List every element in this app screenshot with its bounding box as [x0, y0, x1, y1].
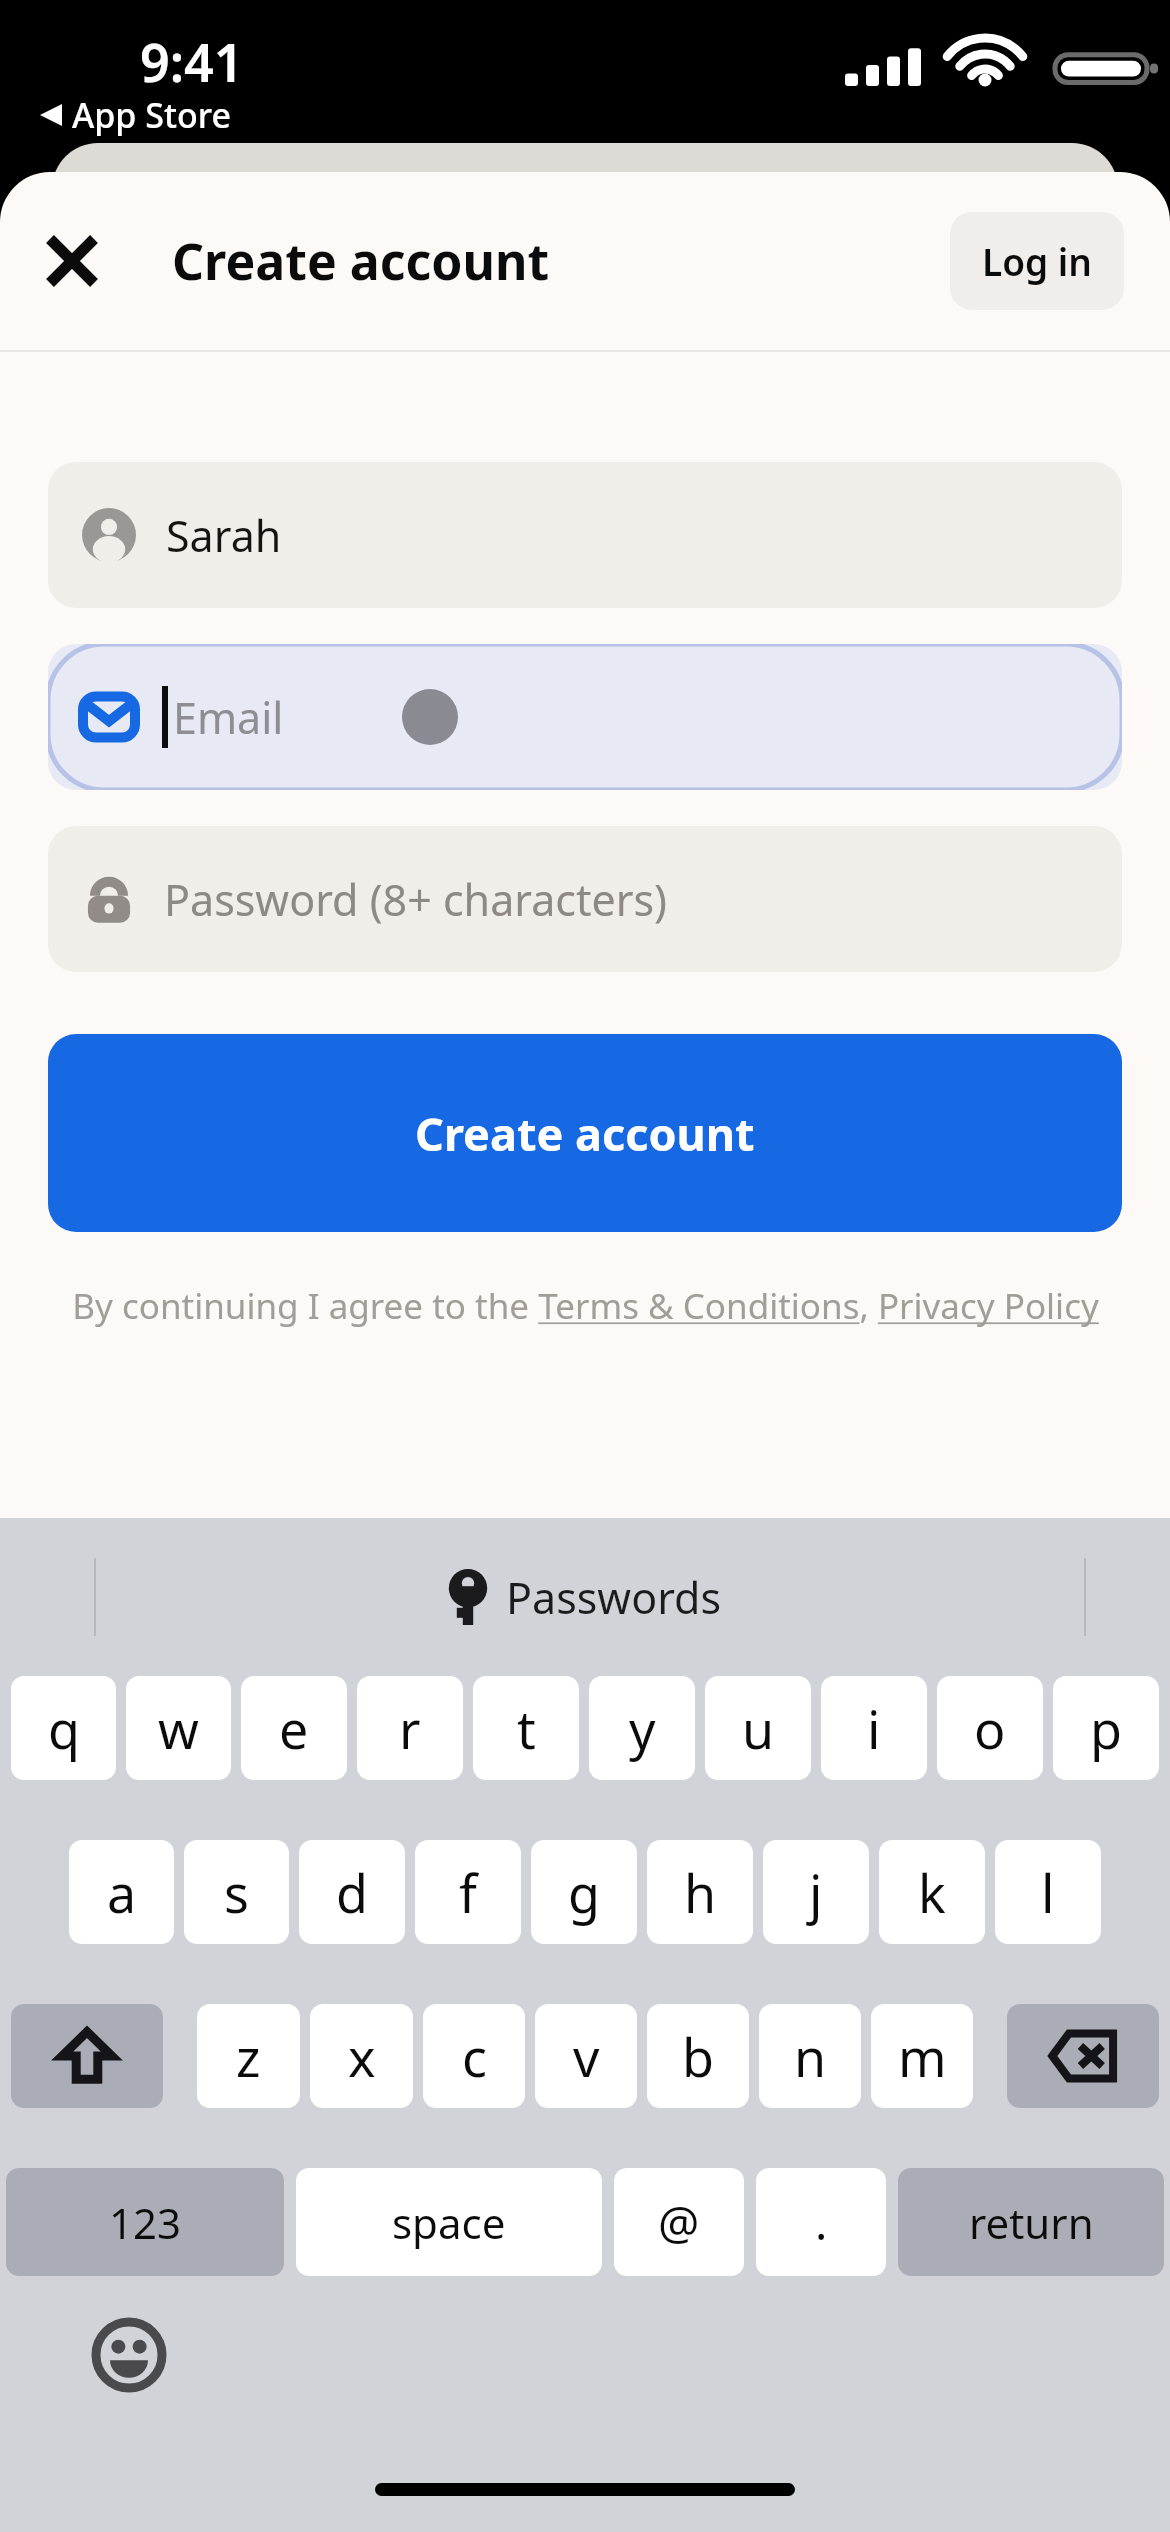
button[interactable]: m [871, 2004, 973, 2108]
staticText: y [629, 1693, 656, 1764]
button[interactable]: k [879, 1840, 985, 1944]
staticText: j [809, 1857, 823, 1928]
staticText: Create account [415, 1103, 755, 1164]
staticText: @ [658, 2191, 700, 2254]
button[interactable]: . [756, 2168, 886, 2276]
staticText: w [158, 1693, 199, 1764]
button[interactable]: y [589, 1676, 695, 1780]
button[interactable]: x [310, 2004, 413, 2108]
staticText: g [568, 1857, 600, 1928]
button[interactable]: t [473, 1676, 579, 1780]
button[interactable]: f [415, 1840, 521, 1944]
button[interactable]: l [995, 1840, 1101, 1944]
button[interactable]: q [11, 1676, 116, 1780]
staticText: c [462, 2021, 487, 2092]
button[interactable]: Email [48, 644, 1122, 790]
staticText: e [279, 1693, 309, 1764]
button[interactable]: s [184, 1840, 289, 1944]
button[interactable]: h [647, 1840, 753, 1944]
staticText: i [867, 1693, 881, 1764]
button[interactable]: r [357, 1676, 463, 1780]
staticText: r [399, 1693, 421, 1764]
staticText: h [684, 1857, 717, 1928]
button[interactable]: w [126, 1676, 231, 1780]
button[interactable]: return [898, 2168, 1164, 2276]
button[interactable]: Log in [950, 212, 1124, 310]
button[interactable]: z [197, 2004, 300, 2108]
staticText: By continuing I agree to the Terms & Con… [72, 1282, 1099, 1330]
button[interactable]: d [299, 1840, 405, 1944]
staticText: q [48, 1693, 80, 1764]
button[interactable]: j [763, 1840, 869, 1944]
staticText: Log in [982, 236, 1092, 286]
button[interactable]: c [423, 2004, 525, 2108]
button[interactable]: space [296, 2168, 602, 2276]
button[interactable]: Sarah [48, 462, 1122, 608]
staticText: b [682, 2021, 714, 2092]
staticText: l [1041, 1857, 1055, 1928]
staticText: Password (8+ characters) [164, 870, 667, 929]
button[interactable]: n [759, 2004, 861, 2108]
button[interactable]: By continuing I agree to the Terms & Con… [48, 1282, 1122, 1330]
staticText: Sarah [166, 506, 282, 565]
button[interactable]: Shift [11, 2004, 163, 2108]
button[interactable]: v [535, 2004, 637, 2108]
button[interactable]: u [705, 1676, 811, 1780]
staticText: return [969, 2194, 1094, 2251]
button[interactable]: Close [26, 215, 118, 307]
staticText: m [898, 2021, 947, 2092]
staticText: p [1090, 1693, 1122, 1764]
staticText: space [392, 2194, 506, 2251]
button[interactable]: e [241, 1676, 347, 1780]
staticText: a [107, 1857, 137, 1928]
staticText: z [236, 2021, 261, 2092]
staticText: x [348, 2021, 376, 2092]
staticText: v [573, 2021, 600, 2092]
staticText: t [517, 1693, 536, 1764]
button[interactable]: a [69, 1840, 174, 1944]
button[interactable]: g [531, 1840, 637, 1944]
staticText: u [742, 1693, 775, 1764]
staticText: s [224, 1857, 249, 1928]
button[interactable]: 123 [6, 2168, 284, 2276]
button[interactable]: i [821, 1676, 927, 1780]
button[interactable]: p [1053, 1676, 1159, 1780]
staticText: Create account [172, 227, 550, 295]
button[interactable]: Backspace [1007, 2004, 1159, 2108]
button[interactable]: Emoji keyboard [88, 2314, 170, 2396]
staticText: n [794, 2021, 827, 2092]
button[interactable]: Passwords [448, 1567, 722, 1627]
button[interactable]: Password (8+ characters) [48, 826, 1122, 972]
staticText: d [336, 1857, 368, 1928]
staticText: Email [173, 688, 284, 747]
button[interactable]: @ [614, 2168, 744, 2276]
staticText: App Store [72, 92, 231, 138]
staticText: f [459, 1857, 477, 1928]
staticText: Passwords [506, 1568, 722, 1627]
staticText: k [918, 1857, 946, 1928]
button[interactable]: o [937, 1676, 1043, 1780]
button[interactable]: Create account [48, 1034, 1122, 1232]
staticText: o [974, 1693, 1006, 1764]
button[interactable]: b [647, 2004, 749, 2108]
staticText: . [815, 2191, 828, 2254]
staticText: 9:41 [140, 26, 244, 97]
staticText: 123 [109, 2194, 182, 2251]
